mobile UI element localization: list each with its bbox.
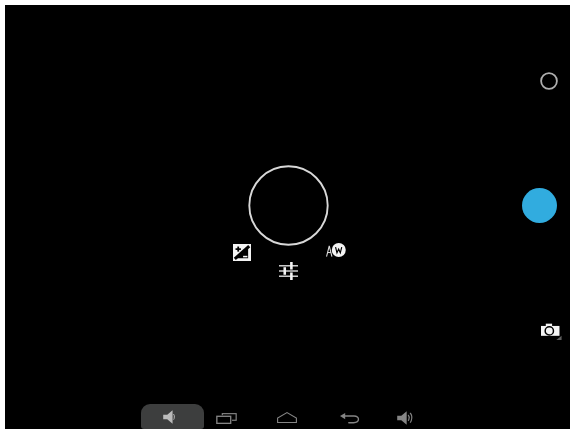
button[interactable]: Capture mode [540,72,558,90]
button[interactable]: Switch camera [541,321,562,340]
button[interactable]: Volume up [397,411,414,425]
button[interactable]: Settings [279,262,298,280]
button[interactable]: Shutter [522,188,557,223]
button[interactable]: Exposure compensation [233,244,251,261]
button[interactable]: Back [340,413,360,423]
button[interactable]: Home [277,412,297,423]
button[interactable]: Volume down [141,404,204,429]
button[interactable]: Recents [216,413,237,424]
button[interactable]: White balance [326,243,344,257]
